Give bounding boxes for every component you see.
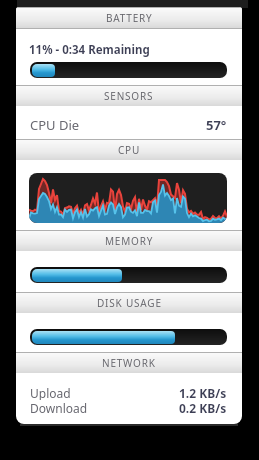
staticText: BATTERY — [106, 11, 153, 25]
button[interactable] — [30, 329, 227, 345]
staticText: MEMORY — [105, 234, 154, 248]
button[interactable] — [30, 62, 227, 78]
button[interactable] — [30, 267, 227, 283]
staticText: DISK USAGE — [97, 296, 162, 310]
staticText: 1.2 KB/s — [179, 385, 227, 400]
staticText: 57° — [206, 116, 227, 134]
staticText: NETWORK — [102, 356, 156, 370]
button[interactable]: CPU Die — [30, 115, 227, 135]
staticText: SENSORS — [104, 89, 154, 103]
button[interactable]: Download — [30, 400, 227, 415]
staticText: Download — [30, 400, 88, 415]
staticText: Upload — [30, 385, 71, 400]
staticText: 11% - 0:34 Remaining — [29, 42, 150, 58]
staticText: CPU — [118, 143, 141, 157]
staticText: CPU Die — [30, 116, 80, 134]
button[interactable] — [29, 173, 227, 223]
button[interactable]: Upload — [30, 385, 227, 400]
staticText: 0.2 KB/s — [179, 400, 227, 415]
